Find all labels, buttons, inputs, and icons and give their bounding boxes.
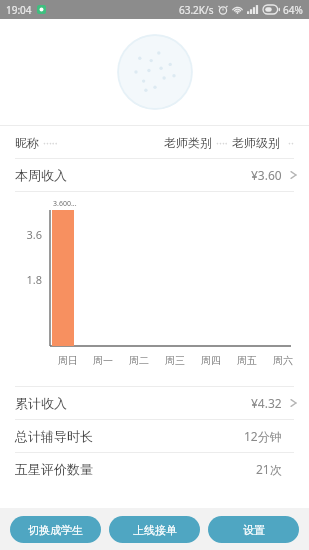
staticText: 1.8 — [26, 272, 42, 287]
staticText: 切换成学生 — [28, 523, 83, 537]
button[interactable]: 本周收入 — [0, 159, 309, 191]
button[interactable]: 五星评价数量 — [0, 453, 309, 485]
staticText: 老师级别 — [232, 135, 280, 150]
staticText: 昵称 — [15, 135, 39, 150]
staticText: 12分钟 — [244, 428, 282, 444]
button[interactable]: 总计辅导时长 — [0, 420, 309, 452]
button[interactable]: 设置 — [208, 516, 299, 543]
button[interactable]: 昵称 — [0, 126, 309, 158]
staticText: 周五 — [237, 354, 257, 367]
button[interactable]: 上线接单 — [109, 516, 200, 543]
button[interactable]: 累计收入 — [0, 387, 309, 419]
staticText: 3.600... — [53, 199, 77, 209]
staticText: 周三 — [165, 354, 185, 367]
staticText: 老师类别 — [164, 135, 212, 150]
staticText: 本周收入 — [15, 167, 67, 183]
staticText: 五星评价数量 — [15, 461, 93, 477]
staticText: 周二 — [129, 354, 149, 367]
staticText: 总计辅导时长 — [15, 428, 93, 444]
staticText: 19:04 — [6, 3, 32, 17]
staticText: 设置 — [243, 523, 265, 537]
staticText: 周六 — [273, 354, 293, 367]
staticText: 累计收入 — [15, 395, 67, 411]
staticText: ¥3.60 — [251, 167, 282, 183]
staticText: 64% — [283, 3, 303, 17]
staticText: 周四 — [201, 354, 221, 367]
staticText: ···· — [216, 135, 228, 150]
staticText: 21次 — [256, 461, 282, 477]
staticText: 周一 — [93, 354, 113, 367]
staticText: 63.2K/s — [179, 3, 214, 17]
staticText: 周日 — [58, 354, 78, 367]
staticText: 上线接单 — [133, 523, 177, 537]
staticText: ·· — [288, 135, 294, 150]
staticText: 3.6 — [26, 227, 42, 242]
button[interactable]: 切换成学生 — [10, 516, 101, 543]
staticText: ····· — [43, 135, 58, 150]
staticText: ¥4.32 — [251, 395, 282, 411]
